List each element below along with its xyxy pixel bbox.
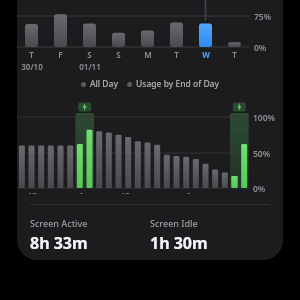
button[interactable]: All Day	[81, 78, 118, 90]
staticText: Screen Active	[30, 217, 88, 229]
staticText: 12 am	[28, 191, 52, 194]
staticText: 6	[186, 191, 191, 194]
staticText: Screen Idle	[150, 217, 198, 229]
button[interactable]: Screen Active	[30, 217, 150, 254]
staticText: S	[116, 49, 121, 60]
button[interactable]: Screen Idle	[150, 217, 270, 254]
staticText: W	[202, 49, 210, 60]
button[interactable]: T	[17, 0, 283, 260]
staticText: 75%	[254, 11, 272, 23]
staticText: 0%	[253, 183, 266, 195]
staticText: All Day	[90, 78, 118, 90]
staticText: 30/10	[21, 61, 43, 70]
staticText: 01/11	[79, 61, 101, 70]
staticText: 100%	[253, 112, 276, 124]
staticText: 12 pm	[121, 191, 145, 194]
staticText: T	[174, 49, 179, 60]
staticText: 0%	[254, 42, 267, 54]
staticText: T	[232, 49, 237, 60]
button[interactable]: Usage by End of Day	[127, 78, 219, 90]
staticText: S	[87, 49, 92, 60]
staticText: Usage by End of Day	[136, 78, 219, 90]
staticText: 6	[79, 191, 84, 194]
staticText: 50%	[253, 148, 271, 160]
staticText: F	[58, 49, 63, 60]
staticText: T	[29, 49, 34, 60]
staticText: 8h 33m	[30, 232, 88, 254]
staticText: 1h 30m	[150, 232, 208, 254]
staticText: M	[144, 49, 152, 60]
